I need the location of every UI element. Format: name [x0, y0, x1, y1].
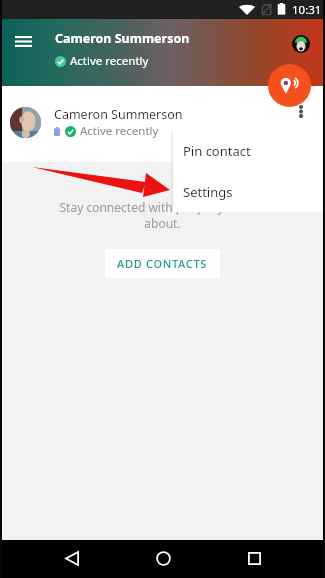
- button[interactable]: Recent apps: [236, 540, 272, 576]
- staticText: Active recently: [70, 53, 149, 69]
- button[interactable]: ADD CONTACTS: [105, 249, 220, 278]
- staticText: ADD CONTACTS: [117, 256, 208, 271]
- button[interactable]: Account: [292, 35, 310, 53]
- staticText: Cameron Summerson: [55, 30, 190, 47]
- staticText: Active recently: [80, 123, 159, 139]
- button[interactable]: Settings: [171, 171, 325, 212]
- staticText: Pin contact: [183, 142, 251, 160]
- staticText: Stay connected with people you care abou…: [0, 199, 325, 231]
- button[interactable]: Pin contact: [171, 131, 325, 171]
- staticText: Cameron Summerson: [54, 106, 183, 123]
- staticText: Settings: [183, 183, 233, 201]
- button[interactable]: Menu: [3, 25, 43, 57]
- button[interactable]: Share location: [268, 64, 311, 107]
- staticText: 10:31: [292, 2, 322, 18]
- button[interactable]: Home: [145, 540, 181, 576]
- button[interactable]: Cameron Summerson: [0, 97, 325, 147]
- button[interactable]: Back: [54, 540, 90, 576]
- button[interactable]: More options: [292, 102, 310, 120]
